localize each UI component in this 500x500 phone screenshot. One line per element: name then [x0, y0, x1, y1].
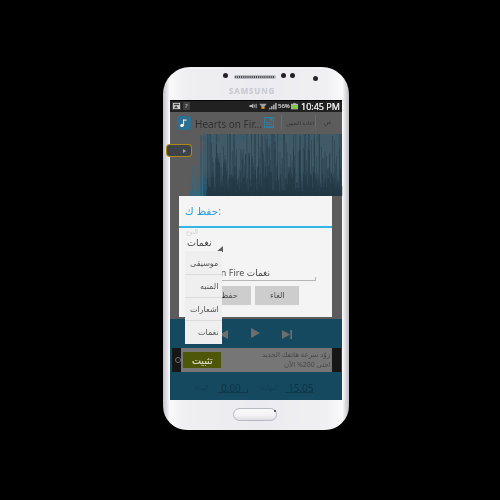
staticText: نغمات	[198, 328, 219, 337]
staticText: ?	[185, 102, 188, 110]
staticText: زوّد سرعة هاتفك الجديد	[262, 350, 331, 360]
staticText: 1:00	[300, 134, 314, 144]
staticText: الغاء	[270, 291, 285, 300]
button[interactable]: عن	[324, 119, 332, 125]
button[interactable]: المنبه	[185, 275, 222, 298]
staticText: النوع	[186, 228, 198, 235]
button[interactable]: Hearts on Fir...	[195, 117, 262, 131]
button[interactable]: نغمات	[185, 321, 222, 344]
button[interactable]: 15.05	[288, 381, 314, 395]
button[interactable]: Home	[234, 409, 276, 420]
staticText: موسيقى	[190, 259, 219, 268]
staticText: 10:45 PM	[301, 100, 340, 112]
button[interactable]: Save	[262, 116, 275, 129]
button[interactable]: Next	[278, 325, 296, 343]
staticText: 0:45	[267, 134, 281, 144]
button[interactable]: Previous	[214, 325, 232, 343]
staticText: :النهاية	[259, 383, 279, 393]
staticText: تثبيت	[192, 355, 213, 366]
staticText: المنبه	[200, 282, 219, 291]
staticText: حفظ ك:	[185, 204, 221, 218]
staticText: Hearts on Fire نغمات	[185, 266, 270, 278]
staticText: 0:15	[200, 134, 214, 144]
staticText: 0:30	[234, 134, 248, 144]
button[interactable]: موسيقى	[185, 251, 222, 275]
button[interactable]: 0.00	[221, 381, 241, 395]
button[interactable]: تثبيت	[172, 348, 341, 372]
button[interactable]: Start marker	[167, 145, 191, 156]
button[interactable]: Play	[246, 324, 264, 342]
staticText: 56%	[278, 102, 290, 110]
staticText: حفظ	[221, 291, 238, 300]
button[interactable]: تثبيت	[183, 352, 221, 368]
staticText: حتى 200% الآن!	[284, 360, 331, 370]
button[interactable]: اشعارات	[185, 298, 222, 321]
staticText: اشعارات	[190, 305, 219, 314]
button[interactable]: App icon	[177, 116, 191, 130]
button[interactable]: اعادة التعيين	[286, 119, 315, 126]
staticText: SAMSUNG	[229, 85, 276, 96]
button[interactable]: نغمات	[187, 237, 212, 248]
button[interactable]: حفظ	[207, 286, 251, 305]
button[interactable]: الغاء	[255, 286, 299, 305]
